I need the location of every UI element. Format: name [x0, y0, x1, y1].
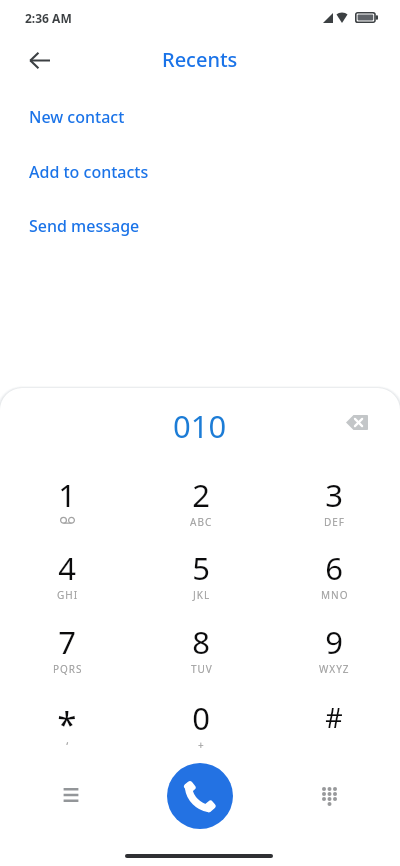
- staticText: 0: [192, 697, 210, 739]
- staticText: ,: [66, 732, 69, 747]
- staticText: 6: [325, 547, 343, 589]
- staticText: PQRS: [53, 662, 83, 676]
- staticText: 5: [192, 547, 210, 589]
- staticText: 3: [325, 474, 343, 516]
- staticText: 2:36 AM: [25, 10, 72, 26]
- button[interactable]: Dialpad: [305, 772, 353, 820]
- staticText: WXYZ: [319, 662, 350, 676]
- staticText: DEF: [324, 515, 346, 529]
- staticText: #: [325, 699, 343, 736]
- staticText: JKL: [193, 588, 211, 602]
- button[interactable]: 7: [0, 624, 134, 688]
- staticText: *: [57, 700, 77, 748]
- button[interactable]: New contact: [19, 100, 135, 134]
- button[interactable]: 1: [0, 477, 134, 541]
- staticText: Recents: [162, 46, 238, 73]
- button[interactable]: 4: [0, 550, 134, 614]
- button[interactable]: #: [267, 700, 400, 764]
- button[interactable]: 9: [267, 624, 400, 688]
- button[interactable]: Backspace: [337, 402, 377, 442]
- button[interactable]: 6: [267, 550, 400, 614]
- staticText: 7: [58, 621, 76, 663]
- button[interactable]: 2: [134, 477, 267, 541]
- staticText: 9: [325, 621, 343, 663]
- staticText: Send message: [29, 215, 140, 237]
- staticText: MNO: [321, 588, 349, 602]
- button[interactable]: 5: [134, 550, 267, 614]
- button[interactable]: 0: [134, 700, 267, 764]
- staticText: 010: [173, 405, 227, 447]
- staticText: TUV: [191, 662, 213, 676]
- staticText: 8: [192, 621, 210, 663]
- staticText: 1: [58, 474, 76, 516]
- button[interactable]: Call history: [47, 771, 95, 819]
- staticText: GHI: [57, 588, 79, 602]
- button[interactable]: Add to contacts: [19, 155, 159, 189]
- staticText: New contact: [29, 106, 125, 128]
- button[interactable]: Send message: [19, 209, 150, 243]
- staticText: 4: [58, 547, 76, 589]
- staticText: Add to contacts: [29, 161, 149, 183]
- staticText: ABC: [190, 515, 213, 529]
- button[interactable]: Back: [15, 36, 63, 84]
- button[interactable]: Call: [167, 763, 233, 829]
- staticText: +: [198, 738, 205, 752]
- button[interactable]: 3: [267, 477, 400, 541]
- staticText: 2: [192, 474, 210, 516]
- button[interactable]: *: [0, 700, 134, 764]
- button[interactable]: 8: [134, 624, 267, 688]
